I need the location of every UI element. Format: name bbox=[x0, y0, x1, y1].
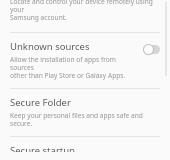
staticText: Locate and control your device remotely … bbox=[10, 0, 158, 22]
button[interactable]: Locate and control your device remotely … bbox=[0, 0, 170, 25]
button[interactable]: Secure Folder bbox=[0, 89, 170, 136]
button[interactable]: Unknown sources toggle, off bbox=[143, 41, 161, 57]
staticText: Allow the installation of apps from sour… bbox=[10, 55, 139, 80]
staticText: Secure startup bbox=[10, 144, 75, 152]
staticText: Unknown sources bbox=[10, 40, 90, 53]
button[interactable]: Unknown sources bbox=[0, 33, 170, 88]
staticText: Secure Folder bbox=[10, 96, 71, 109]
staticText: Keep your personal files and apps safe a… bbox=[10, 111, 161, 128]
button[interactable]: Secure startup bbox=[0, 137, 170, 160]
